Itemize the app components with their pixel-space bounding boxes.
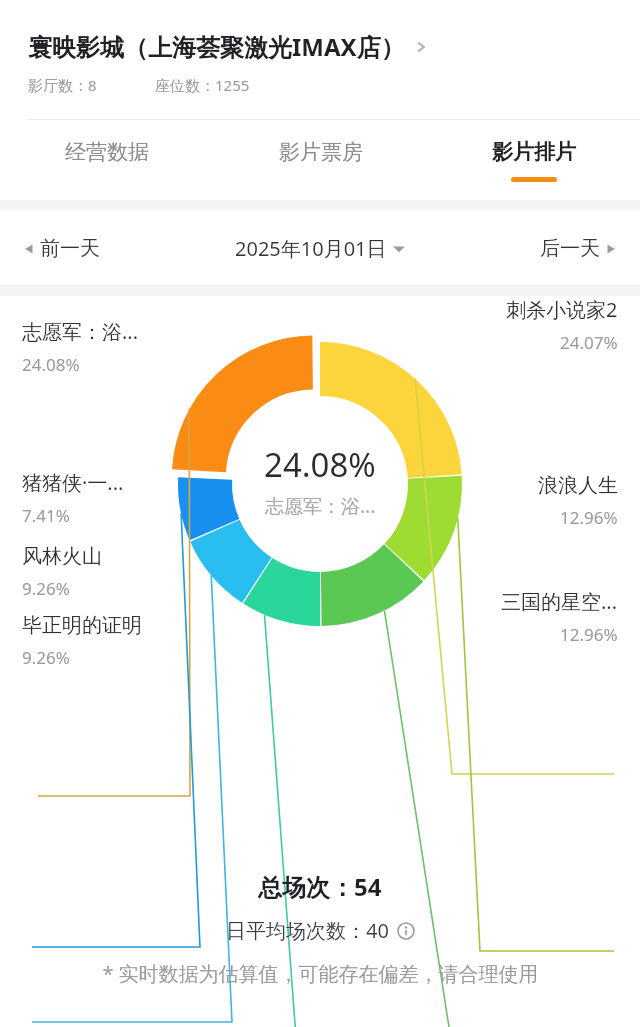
staticText: 24.07% [560, 331, 618, 354]
staticText: 猪猪侠·一... [22, 469, 124, 496]
staticText: 12.96% [560, 623, 618, 646]
staticText: 12.96% [560, 506, 618, 529]
button[interactable]: 前一天 [22, 236, 100, 261]
button[interactable]: 猪猪侠·一... [22, 469, 124, 527]
staticText: 影厅数：8 [28, 75, 97, 95]
button[interactable]: 日平均场次数：40 [226, 917, 415, 944]
staticText: 三国的星空... [501, 588, 618, 615]
staticText: 志愿军：浴... [22, 318, 139, 345]
staticText: 24.08% [22, 353, 80, 376]
staticText: 9.26% [22, 646, 70, 669]
button[interactable]: 志愿军：浴... [22, 318, 139, 376]
staticText: 风林火山 [22, 544, 102, 569]
staticText: 总场次：54 [258, 870, 382, 903]
staticText: 9.26% [22, 577, 70, 600]
other: 说明 [397, 922, 415, 940]
staticText: 座位数：1255 [155, 75, 250, 95]
button[interactable]: 后一天 [540, 236, 618, 261]
button[interactable]: 寰映影城（上海荟聚激光IMAX店） [28, 30, 445, 63]
button[interactable]: 风林火山 [22, 544, 102, 600]
staticText: 24.08% [264, 442, 376, 487]
staticText: 7.41% [22, 504, 70, 527]
staticText: 影片票房 [279, 139, 363, 165]
staticText: 日平均场次数：40 [226, 917, 389, 944]
staticText: 志愿军：浴... [265, 493, 376, 519]
button[interactable]: 经营数据 [0, 120, 214, 200]
button[interactable]: 刺杀小说家2 [506, 296, 618, 354]
staticText: 毕正明的证明 [22, 613, 142, 638]
staticText: 刺杀小说家2 [506, 296, 618, 323]
staticText: 后一天 [540, 236, 600, 261]
staticText: 寰映影城（上海荟聚激光IMAX店） [28, 30, 405, 63]
button[interactable]: 浪浪人生 [538, 473, 618, 529]
staticText: 2025年10月01日 [235, 235, 387, 262]
button[interactable]: 影片票房 [214, 120, 427, 200]
staticText: * 实时数据为估算值，可能存在偏差，请合理使用 [102, 960, 539, 987]
staticText: 浪浪人生 [538, 473, 618, 498]
staticText: 影片排片 [492, 139, 576, 165]
staticText: 经营数据 [65, 139, 149, 165]
button[interactable]: 2025年10月01日 [235, 235, 405, 262]
staticText: 前一天 [40, 236, 100, 261]
button[interactable]: 三国的星空... [501, 588, 618, 646]
button[interactable]: 毕正明的证明 [22, 613, 142, 669]
button[interactable]: 影片排片 [427, 120, 640, 200]
